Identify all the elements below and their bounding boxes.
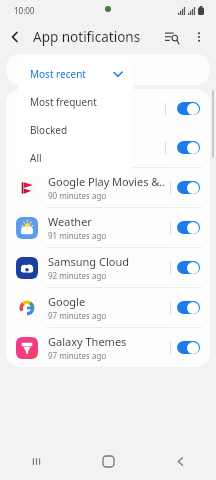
staticText: All bbox=[30, 151, 123, 165]
staticText: Galaxy Themes bbox=[48, 334, 127, 349]
button[interactable]: Toggle notifications bbox=[177, 261, 200, 274]
staticText: Most frequent bbox=[30, 95, 123, 109]
button[interactable]: Back bbox=[144, 442, 216, 480]
button[interactable]: More options bbox=[186, 24, 212, 50]
staticText: 90 minutes ago bbox=[48, 190, 107, 201]
button[interactable]: Back bbox=[0, 22, 30, 52]
staticText: Weather bbox=[48, 214, 92, 229]
button[interactable]: Galaxy Themes bbox=[6, 328, 210, 367]
staticText: Samsung Cloud bbox=[48, 254, 129, 269]
staticText: 91 minutes ago bbox=[48, 230, 107, 241]
staticText: 10:00 bbox=[14, 5, 35, 16]
staticText: 97 minutes ago bbox=[48, 310, 107, 321]
button[interactable]: Home bbox=[72, 442, 144, 480]
staticText: App notifications bbox=[33, 28, 141, 46]
button[interactable]: Blocked bbox=[18, 116, 133, 144]
button[interactable]: Toggle notifications bbox=[177, 341, 200, 354]
staticText: Blocked bbox=[30, 123, 123, 137]
staticText: 92 minutes ago bbox=[48, 270, 107, 281]
staticText: Google Play Movies &.. bbox=[48, 174, 166, 189]
button[interactable]: Most frequent bbox=[18, 88, 133, 116]
button[interactable]: Search bbox=[158, 23, 186, 51]
button[interactable]: Most recent bbox=[18, 60, 133, 88]
button[interactable]: Toggle notifications bbox=[177, 181, 200, 194]
staticText: 97 minutes ago bbox=[48, 350, 107, 361]
button[interactable]: Toggle notifications bbox=[177, 102, 200, 115]
button[interactable]: Google bbox=[6, 288, 210, 327]
staticText: Google bbox=[48, 294, 86, 309]
button[interactable]: Samsung Cloud bbox=[6, 248, 210, 287]
button[interactable]: Weather bbox=[6, 208, 210, 247]
button[interactable]: Toggle notifications bbox=[177, 141, 200, 154]
button[interactable]: Recent apps bbox=[0, 442, 72, 480]
button[interactable] bbox=[6, 54, 210, 85]
button[interactable]: Google Play Movies &.. bbox=[6, 168, 210, 207]
button[interactable]: Toggle notifications bbox=[177, 301, 200, 314]
button[interactable]: All bbox=[18, 144, 133, 172]
button[interactable]: Toggle notifications bbox=[177, 221, 200, 234]
staticText: Most recent bbox=[30, 67, 113, 81]
